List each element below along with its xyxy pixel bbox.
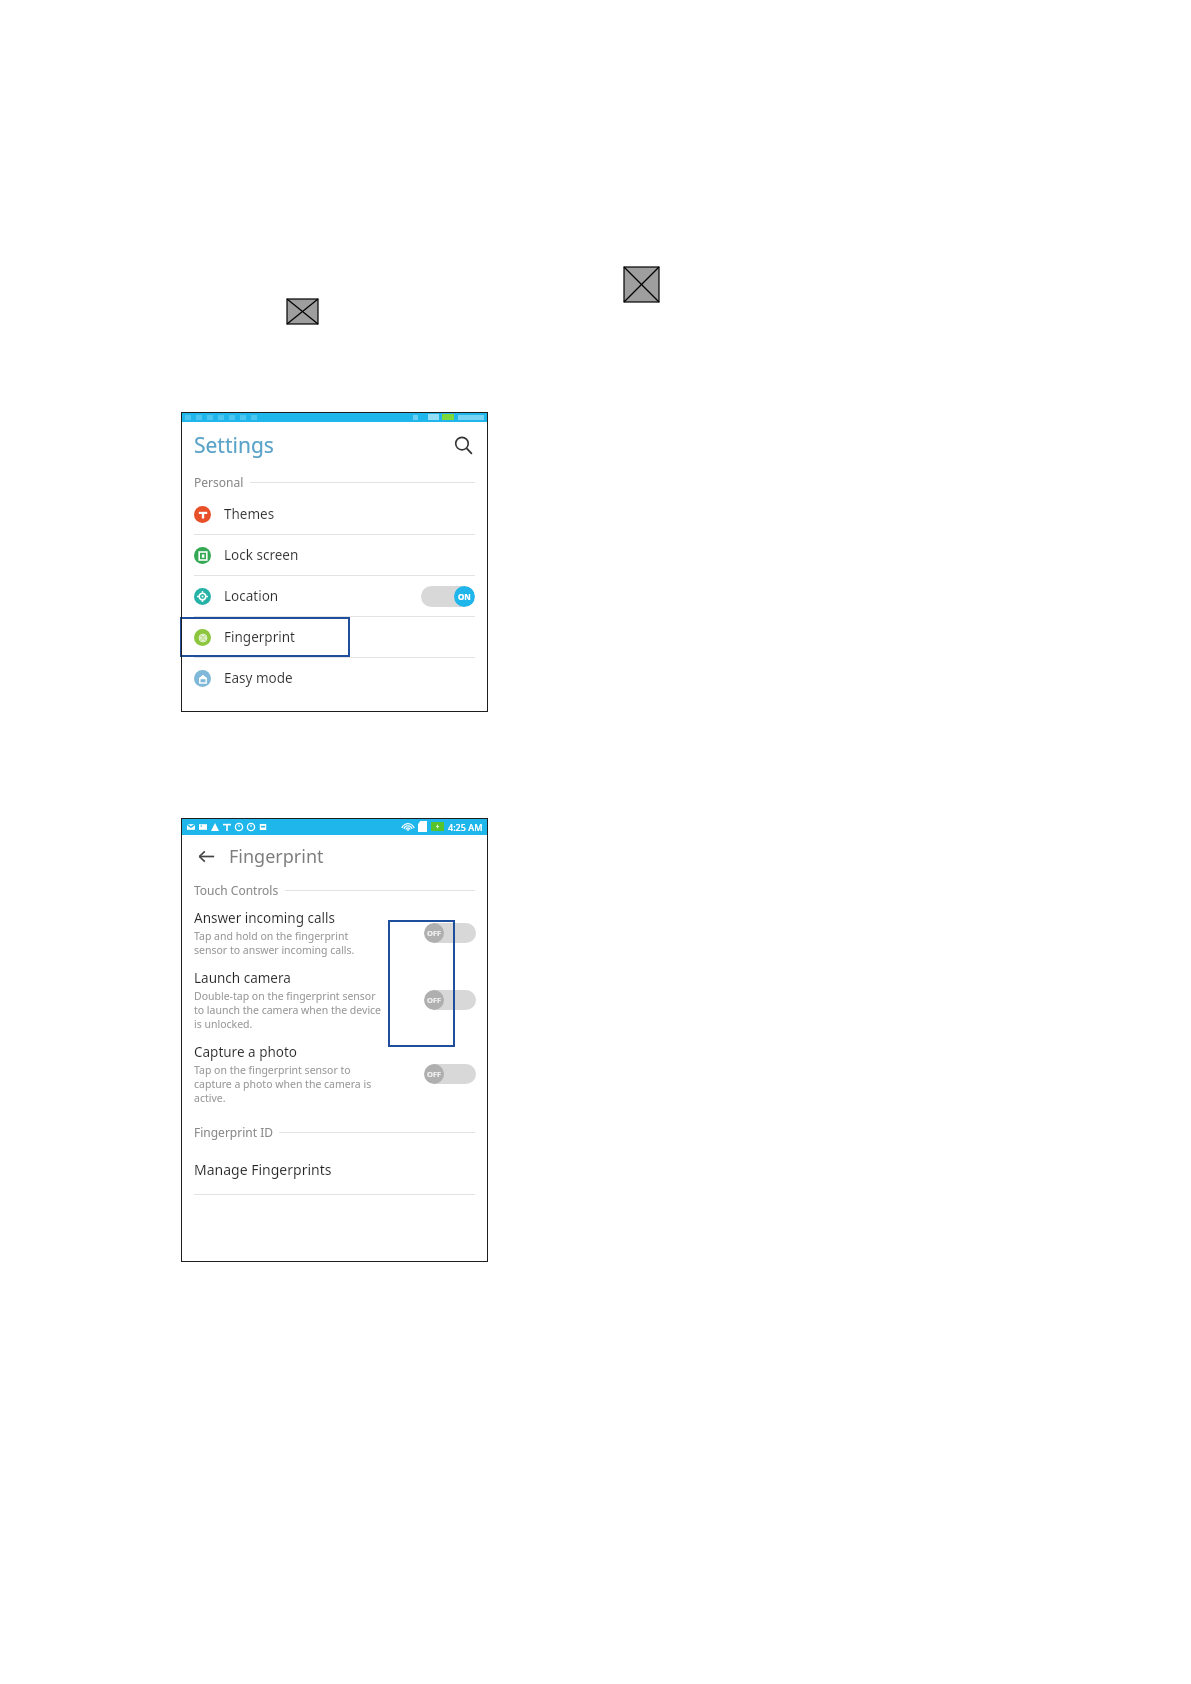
button[interactable]: Themes: [181, 494, 488, 534]
staticText: Fingerprint: [229, 844, 324, 869]
staticText: Tap on the fingerprint sensor to: [194, 1063, 351, 1077]
button[interactable]: Location: [181, 576, 488, 616]
button[interactable]: Capture a photo: [181, 1037, 488, 1111]
button[interactable]: OFF: [424, 923, 476, 943]
button[interactable]: Launch camera: [181, 963, 488, 1037]
button[interactable]: Fingerprint: [181, 617, 488, 657]
staticText: Lock screen: [224, 546, 299, 564]
staticText: is unlocked.: [194, 1017, 253, 1031]
staticText: Location: [224, 587, 279, 605]
staticText: Personal: [194, 474, 244, 490]
staticText: Easy mode: [224, 669, 293, 687]
staticText: Launch camera: [194, 969, 291, 987]
staticText: OFF: [427, 1069, 442, 1079]
staticText: Double-tap on the fingerprint sensor: [194, 989, 376, 1003]
button[interactable]: ON: [421, 586, 475, 607]
button[interactable]: Back: [193, 843, 219, 869]
staticText: Settings: [194, 431, 274, 460]
button[interactable]: OFF: [424, 990, 476, 1010]
staticText: OFF: [427, 995, 442, 1005]
button[interactable]: OFF: [424, 1064, 476, 1084]
button[interactable]: Search: [448, 430, 478, 460]
button[interactable]: Lock screen: [181, 535, 488, 575]
staticText: active.: [194, 1091, 226, 1105]
staticText: Fingerprint: [224, 628, 295, 646]
staticText: Fingerprint ID: [194, 1124, 273, 1140]
staticText: Answer incoming calls: [194, 909, 335, 927]
button[interactable]: Manage Fingerprints: [181, 1154, 488, 1184]
staticText: capture a photo when the camera is: [194, 1077, 372, 1091]
staticText: to launch the camera when the device: [194, 1003, 382, 1017]
staticText: Themes: [224, 505, 275, 523]
staticText: Manage Fingerprints: [194, 1160, 332, 1179]
staticText: OFF: [427, 928, 442, 938]
staticText: Capture a photo: [194, 1043, 297, 1061]
staticText: sensor to answer incoming calls.: [194, 943, 355, 957]
staticText: ON: [458, 591, 471, 602]
button[interactable]: Easy mode: [181, 658, 488, 698]
staticText: Touch Controls: [194, 882, 279, 898]
staticText: Tap and hold on the fingerprint: [194, 929, 349, 943]
staticText: 4:25 AM: [448, 821, 483, 833]
button[interactable]: Answer incoming calls: [181, 903, 488, 963]
